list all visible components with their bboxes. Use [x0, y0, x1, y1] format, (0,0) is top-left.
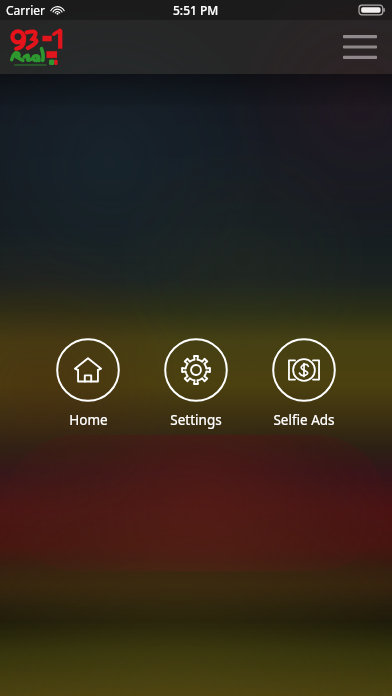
button[interactable]: Home: [45, 336, 131, 431]
staticText: Selfie Ads: [273, 411, 335, 429]
staticText: Carrier: [6, 2, 46, 18]
button[interactable]: Settings: [153, 336, 239, 431]
staticText: 5:51 PM: [173, 2, 219, 18]
staticText: Settings: [170, 411, 222, 429]
staticText: Home: [69, 411, 108, 429]
button[interactable]: Selfie Ads: [261, 336, 347, 431]
button[interactable]: Menu: [338, 27, 382, 67]
button[interactable]: 93.1 Real FM home: [8, 26, 70, 68]
